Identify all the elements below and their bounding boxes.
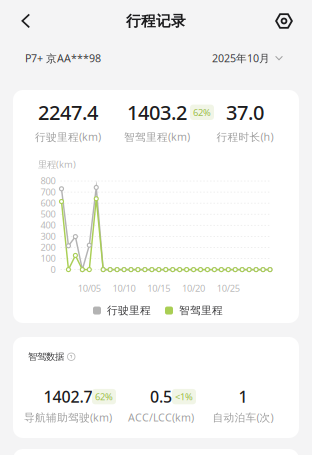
staticText: <1% <box>175 390 193 403</box>
staticText: 37.0 <box>226 99 264 126</box>
staticText: 62% <box>95 390 113 403</box>
staticText: 1402.7 <box>43 386 92 407</box>
button[interactable]: 2025年10月 <box>212 51 283 65</box>
staticText: 0 <box>50 263 55 275</box>
staticText: 自动泊车(次) <box>212 410 273 424</box>
staticText: 62% <box>193 106 211 118</box>
staticText: 导航辅助驾驶(km) <box>24 410 112 424</box>
staticText: 行程记录 <box>126 12 186 30</box>
staticText: 400 <box>40 219 55 231</box>
staticText: 1403.2 <box>127 99 187 126</box>
staticText: 100 <box>40 252 55 264</box>
staticText: 智驾数据 <box>28 351 64 362</box>
staticText: 10/10 <box>113 282 136 294</box>
staticText: 0.5 <box>150 386 172 407</box>
staticText: 10/25 <box>217 282 240 294</box>
staticText: 300 <box>40 230 55 242</box>
staticText: 里程(km) <box>38 158 76 170</box>
button[interactable]: Settings <box>263 0 305 42</box>
staticText: 智驾里程(km) <box>124 130 190 144</box>
staticText: 2025年10月 <box>212 51 270 65</box>
staticText: 200 <box>40 241 55 253</box>
staticText: 10/05 <box>78 282 101 294</box>
staticText: 600 <box>40 197 55 209</box>
staticText: 行程时长(h) <box>216 130 273 144</box>
staticText: 智驾里程 <box>179 304 223 317</box>
staticText: P7+ 京AA***98 <box>25 51 101 65</box>
staticText: 500 <box>40 208 55 220</box>
staticText: 行驶里程(km) <box>35 130 101 144</box>
staticText: 1 <box>238 386 247 407</box>
staticText: 700 <box>40 186 55 198</box>
staticText: 800 <box>40 174 55 187</box>
staticText: 2247.4 <box>38 99 98 126</box>
staticText: 10/20 <box>182 282 205 294</box>
staticText: 10/15 <box>147 282 170 294</box>
staticText: ACC/LCC(km) <box>128 410 194 424</box>
staticText: 行驶里程 <box>107 304 151 317</box>
button[interactable]: Back <box>5 0 47 42</box>
